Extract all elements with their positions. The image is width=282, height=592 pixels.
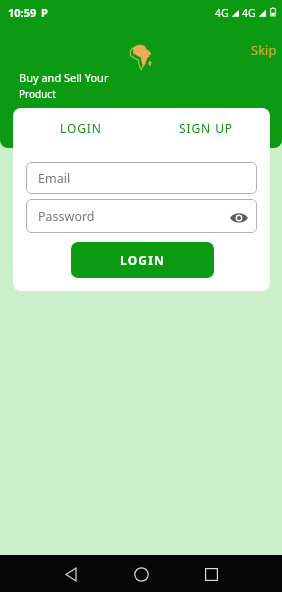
button[interactable]: SIGN UP xyxy=(171,115,241,141)
staticText: Product xyxy=(19,87,56,101)
staticText: SIGN UP xyxy=(179,120,233,136)
staticText: Email xyxy=(38,170,71,187)
staticText: LOGIN xyxy=(60,120,102,136)
staticText: P xyxy=(41,5,48,20)
button[interactable]: Password xyxy=(26,199,257,233)
button[interactable]: Email xyxy=(26,162,257,194)
button[interactable]: Show password xyxy=(228,207,250,229)
staticText: 4G xyxy=(215,6,229,20)
staticText: Skip xyxy=(251,41,277,59)
button[interactable]: LOGIN xyxy=(71,242,214,278)
staticText: 10:59 xyxy=(8,5,37,20)
button[interactable]: Recent apps xyxy=(193,556,229,592)
button[interactable]: Back xyxy=(53,556,89,592)
button[interactable]: Home xyxy=(123,556,159,592)
staticText: LOGIN xyxy=(120,252,166,268)
staticText: 4G xyxy=(242,6,256,20)
staticText: Password xyxy=(38,208,95,225)
button[interactable]: LOGIN xyxy=(52,115,110,141)
staticText: Buy and Sell Your xyxy=(19,70,109,85)
button[interactable]: Skip xyxy=(245,37,282,63)
